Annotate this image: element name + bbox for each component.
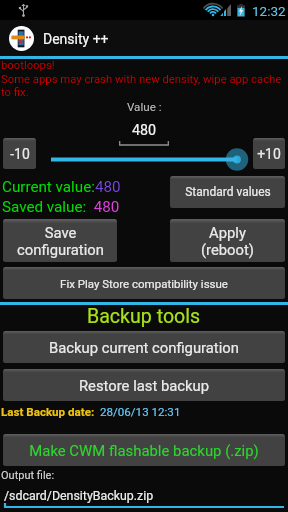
staticText: Restore last backup [79, 377, 209, 394]
staticText: Density ++ [43, 31, 109, 47]
button[interactable]: Density slider [36, 138, 253, 169]
staticText: Backup current configuration [49, 339, 239, 356]
button[interactable]: Fix Play Store compatibility issue [3, 267, 285, 299]
staticText: Apply (reboot) [201, 224, 254, 258]
button[interactable]: Apply (reboot) [170, 219, 285, 262]
staticText: Output file: [1, 469, 55, 482]
staticText: /sdcard/DensityBackup.zip [4, 488, 154, 503]
staticText: Current value:480 Saved value: 480 [2, 178, 121, 216]
staticText: +10 [257, 146, 281, 162]
staticText: Last Backup date: 28/06/13 12:31 [1, 405, 181, 419]
button[interactable]: Make CWM flashable backup (.zip) [3, 434, 285, 466]
staticText: Save configuration [17, 224, 104, 258]
staticText: Make CWM flashable backup (.zip) [29, 442, 259, 459]
other: USB connected [18, 3, 29, 17]
button[interactable]: +10 [253, 138, 285, 169]
staticText: Backup tools [87, 305, 201, 328]
staticText: 480 [132, 122, 157, 139]
button[interactable]: Restore last backup [3, 369, 285, 401]
button[interactable]: Backup current configuration [3, 331, 285, 363]
staticText: Value : [127, 100, 162, 114]
button[interactable]: -10 [3, 138, 36, 169]
staticText: -10 [10, 146, 30, 162]
button[interactable]: Standard values [170, 176, 285, 208]
staticText: 12:32 [252, 3, 286, 19]
staticText: Fix Play Store compatibility issue [60, 277, 228, 290]
staticText: bootloops! Some apps may crash with new … [1, 59, 282, 98]
button[interactable]: Save configuration [3, 219, 117, 262]
staticText: Standard values [185, 185, 271, 199]
